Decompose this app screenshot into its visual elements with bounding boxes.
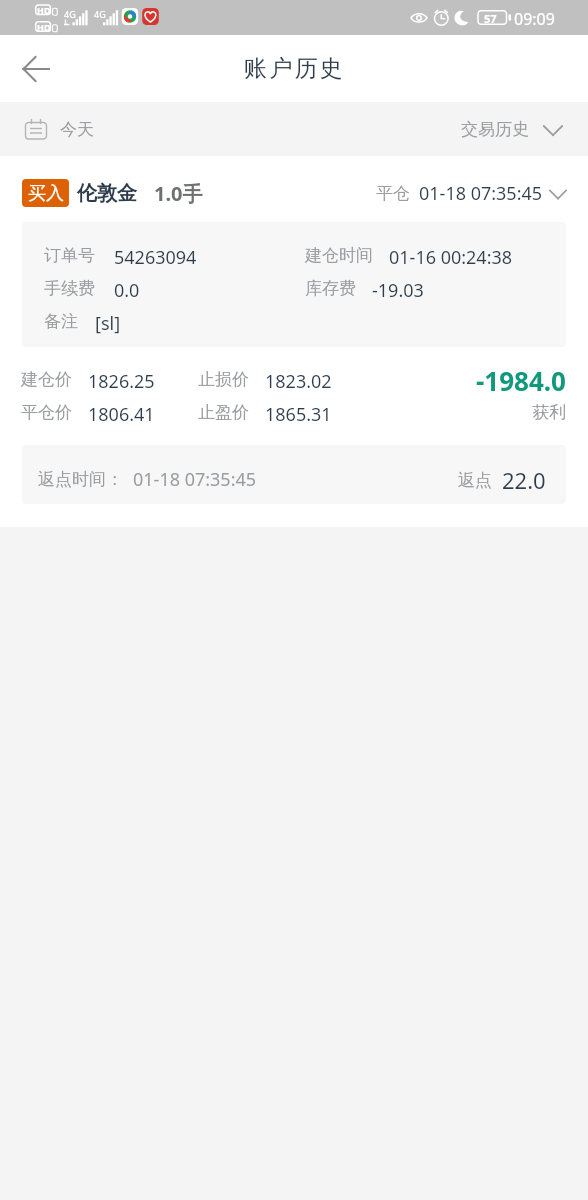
staticText: 01-18 07:35:45 (133, 467, 257, 492)
staticText: 账户历史 (244, 54, 345, 83)
staticText: 平仓 (376, 183, 410, 204)
staticText: HD (37, 4, 51, 16)
staticText: 平仓价 (21, 402, 72, 423)
staticText: 建仓时间 (305, 245, 373, 266)
staticText: 09:09 (514, 8, 555, 30)
staticText: 1.0手 (154, 180, 203, 207)
staticText: 止盈价 (198, 402, 249, 423)
button[interactable]: Back (10, 43, 62, 95)
staticText: 买入 (28, 182, 64, 205)
staticText: 返点时间： (38, 469, 123, 490)
staticText: 备注 (44, 311, 78, 332)
staticText: 4G (64, 8, 76, 20)
staticText: 0.0 (114, 278, 140, 303)
staticText: -1984.0 (476, 363, 566, 398)
staticText: 订单号 (44, 245, 95, 266)
staticText: 获利 (532, 402, 566, 423)
staticText: 1806.41 (88, 402, 155, 427)
staticText: 01-16 00:24:38 (389, 245, 513, 270)
button[interactable]: 今天 (25, 119, 94, 140)
staticText: 今天 (60, 119, 94, 140)
staticText: [sl] (95, 311, 121, 336)
staticText: 止损价 (198, 369, 249, 390)
button[interactable]: 买入 (22, 179, 203, 207)
staticText: -19.03 (372, 278, 424, 303)
staticText: 手续费 (44, 278, 95, 299)
staticText: 54263094 (114, 245, 197, 270)
staticText: 22.0 (502, 465, 546, 495)
staticText: 1823.02 (265, 369, 332, 394)
staticText: 交易历史 (461, 119, 529, 140)
staticText: 库存费 (305, 278, 356, 299)
staticText: 建仓价 (21, 369, 72, 390)
staticText: 1826.25 (88, 369, 155, 394)
staticText: 4G (94, 8, 106, 20)
staticText: 57 (484, 11, 497, 26)
button[interactable]: 交易历史 (461, 119, 563, 140)
staticText: HD (37, 21, 51, 33)
button[interactable]: 平仓 (376, 181, 567, 206)
staticText: 返点 (458, 470, 492, 491)
staticText: 01-18 07:35:45 (419, 181, 543, 206)
staticText: 1865.31 (265, 402, 332, 427)
staticText: 伦敦金 (77, 181, 137, 206)
